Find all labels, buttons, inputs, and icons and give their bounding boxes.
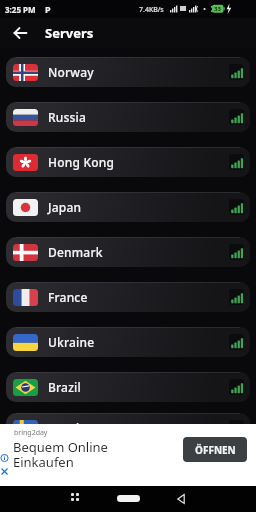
staticText: Russia	[48, 109, 87, 125]
staticText: Brazil	[48, 379, 81, 395]
button[interactable]	[0, 453, 10, 463]
button[interactable]: France	[6, 282, 250, 312]
staticText: 3:25 PM	[5, 4, 36, 15]
staticText: Servers	[45, 24, 94, 42]
button[interactable]: Brazil	[6, 372, 250, 402]
staticText: Bequem Online	[13, 438, 108, 456]
staticText: Japan	[48, 199, 82, 215]
button[interactable]: ÖFFNEN	[183, 437, 247, 462]
button[interactable]: Denmark	[6, 237, 250, 267]
staticText: Ukraine	[48, 334, 95, 350]
staticText: Sweden	[48, 420, 95, 436]
button[interactable]	[114, 492, 143, 505]
button[interactable]	[8, 21, 32, 45]
staticText: Denmark	[48, 244, 103, 260]
button[interactable]: Sweden	[6, 413, 250, 443]
staticText: Einkaufen	[13, 453, 74, 471]
button[interactable]	[0, 467, 10, 477]
button[interactable]: Japan	[6, 192, 250, 222]
staticText: P	[45, 3, 51, 15]
staticText: 33	[214, 5, 221, 13]
staticText: bring2day	[14, 428, 48, 438]
button[interactable]: Russia	[6, 102, 250, 132]
button[interactable]: Norway	[6, 57, 250, 87]
button[interactable]: Hong Kong	[6, 147, 250, 177]
button[interactable]	[172, 490, 190, 508]
staticText: ÖFFNEN	[195, 443, 236, 457]
staticText: Norway	[48, 64, 94, 80]
staticText: 7.4KB/s	[139, 5, 164, 15]
staticText: Hong Kong	[48, 154, 115, 170]
staticText: France	[48, 289, 88, 305]
button[interactable]: bring2day	[0, 424, 256, 486]
button[interactable]: Ukraine	[6, 327, 250, 357]
button[interactable]	[66, 488, 84, 506]
